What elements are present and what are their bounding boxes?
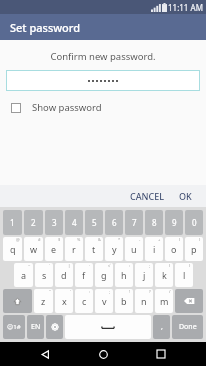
button[interactable]: 1 (3, 210, 22, 235)
button[interactable]: 0 (185, 210, 203, 235)
staticText: ` (49, 263, 51, 268)
staticText: CANCEL (130, 190, 165, 202)
button[interactable]: c (75, 289, 93, 313)
button[interactable]: , (153, 315, 170, 339)
button[interactable]: p (185, 237, 203, 261)
button[interactable]: n (135, 289, 153, 313)
button[interactable]: 8 (145, 210, 163, 235)
staticText: w (30, 243, 38, 255)
staticText: g (101, 269, 107, 281)
button[interactable]: 9 (165, 210, 183, 235)
staticText: ( (169, 263, 171, 268)
staticText: , (161, 322, 163, 332)
button[interactable]: d (55, 263, 73, 287)
button[interactable]: 3 (45, 210, 63, 235)
staticText: : (129, 263, 131, 268)
button[interactable]: u (125, 237, 143, 261)
button[interactable]: Keyboard settings (46, 315, 63, 339)
button[interactable]: b (115, 289, 133, 313)
staticText: 0 (192, 217, 197, 228)
staticText: 4 (72, 217, 77, 228)
staticText: i (153, 243, 156, 255)
button[interactable] (6, 70, 200, 91)
button[interactable]: Home (90, 342, 116, 366)
button[interactable]: OK (172, 186, 206, 206)
staticText: b (121, 295, 127, 307)
staticText: % (77, 237, 81, 242)
button[interactable]: y (105, 237, 123, 261)
button[interactable]: Shift (3, 289, 32, 313)
button[interactable]: q (3, 237, 22, 261)
button[interactable]: x (55, 289, 73, 313)
staticText: f (82, 269, 86, 281)
button[interactable]: Recent apps (148, 342, 174, 366)
button[interactable]: r (65, 237, 83, 261)
button[interactable]: g (95, 263, 113, 287)
staticText: + (158, 237, 161, 242)
button[interactable]: Space (65, 315, 151, 339)
staticText: Set password (10, 20, 81, 35)
staticText: p (191, 243, 197, 255)
staticText: / (169, 289, 171, 294)
button[interactable]: t (85, 237, 103, 261)
button[interactable]: 4 (65, 210, 83, 235)
button[interactable]: 5 (85, 210, 103, 235)
button[interactable]: ☺1# (3, 315, 25, 339)
staticText: ) (189, 263, 191, 268)
staticText: c (82, 295, 87, 307)
staticText: # (38, 237, 41, 242)
staticText: j (143, 269, 146, 281)
staticText: ☺1# (7, 323, 21, 331)
button[interactable]: Backspace (175, 289, 203, 313)
button[interactable]: z (34, 289, 53, 313)
button[interactable]: e (45, 237, 63, 261)
button[interactable]: k (155, 263, 173, 287)
button[interactable]: 2 (24, 210, 43, 235)
button[interactable]: 7 (125, 210, 143, 235)
staticText: * (118, 237, 121, 242)
staticText: 7 (132, 217, 137, 228)
staticText: 8 (152, 217, 157, 228)
button[interactable]: i (145, 237, 163, 261)
staticText: : (89, 289, 91, 294)
staticText: y (112, 243, 117, 255)
staticText: a (21, 269, 27, 281)
staticText: @ (16, 237, 20, 242)
staticText: OK (179, 190, 192, 202)
button[interactable]: o (165, 237, 183, 261)
staticText: x (62, 295, 67, 307)
staticText: & (98, 237, 101, 242)
staticText: " (49, 289, 51, 294)
button[interactable]: l (175, 263, 193, 287)
staticText: h (121, 269, 127, 281)
button[interactable]: EN (27, 315, 44, 339)
button[interactable]: Done (172, 315, 203, 339)
button[interactable]: f (75, 263, 93, 287)
button[interactable]: m (155, 289, 173, 313)
button[interactable]: s (35, 263, 53, 287)
staticText: Done (179, 322, 197, 332)
button[interactable]: v (95, 289, 113, 313)
button[interactable]: Show password (11, 101, 206, 114)
staticText: 6 (112, 217, 117, 228)
staticText: 1 (10, 217, 15, 228)
button[interactable]: Back (32, 342, 58, 366)
staticText: ( (179, 237, 181, 242)
staticText: d (61, 269, 67, 281)
button[interactable]: a (14, 263, 33, 287)
staticText: 2 (31, 217, 36, 228)
staticText: $ (58, 237, 61, 242)
staticText: v (102, 295, 107, 307)
button[interactable]: CANCEL (123, 186, 172, 206)
button[interactable]: w (24, 237, 43, 261)
staticText: ! (129, 289, 131, 294)
button[interactable]: 6 (105, 210, 123, 235)
staticText: l (183, 269, 186, 281)
button[interactable]: j (135, 263, 153, 287)
staticText: z (41, 295, 46, 307)
staticText: q (10, 243, 16, 255)
staticText: ; (149, 263, 151, 268)
button[interactable]: h (115, 263, 133, 287)
staticText: n (141, 295, 147, 307)
